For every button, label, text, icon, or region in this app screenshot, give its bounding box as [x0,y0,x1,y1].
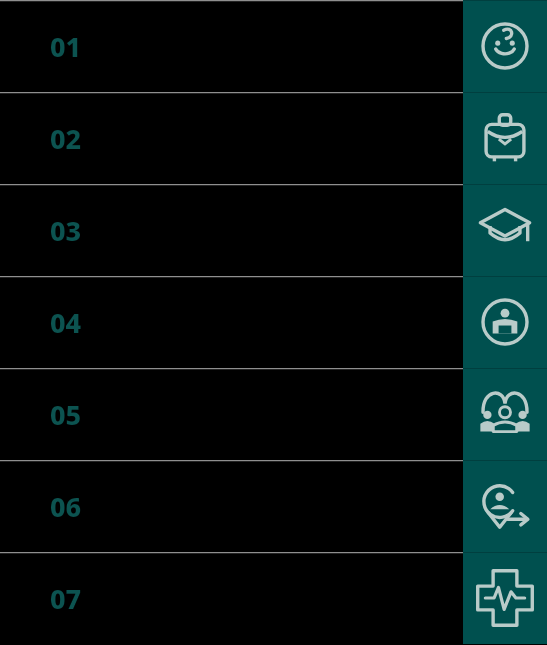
button[interactable]: 02 [0,92,547,184]
staticText: 02 [50,120,82,157]
button[interactable]: Relocation [463,460,547,552]
staticText: 03 [50,212,82,249]
staticText: 04 [50,304,82,341]
staticText: 01 [50,28,82,65]
button[interactable]: 07 [0,552,547,644]
staticText: 07 [50,580,82,617]
button[interactable]: Baby [463,0,547,92]
button[interactable]: Luggage [463,92,547,184]
button[interactable]: Person [463,276,547,368]
button[interactable]: 04 [0,276,547,368]
button[interactable]: Family [463,368,547,460]
button[interactable]: 03 [0,184,547,276]
button[interactable]: 06 [0,460,547,552]
button[interactable]: Education [463,184,547,276]
staticText: 06 [50,488,82,525]
button[interactable]: Medical [463,552,547,644]
button[interactable]: 05 [0,368,547,460]
button[interactable]: 01 [0,0,547,92]
staticText: 05 [50,396,82,433]
